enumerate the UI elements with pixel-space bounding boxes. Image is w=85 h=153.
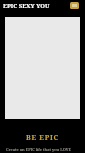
- button[interactable]: EPIC SEXY YOU: [3, 2, 50, 10]
- button[interactable]: Open menu: [70, 2, 79, 9]
- button[interactable]: BE EPIC: [26, 133, 59, 143]
- staticText: Create an EPIC life that you LOVE: [6, 147, 72, 153]
